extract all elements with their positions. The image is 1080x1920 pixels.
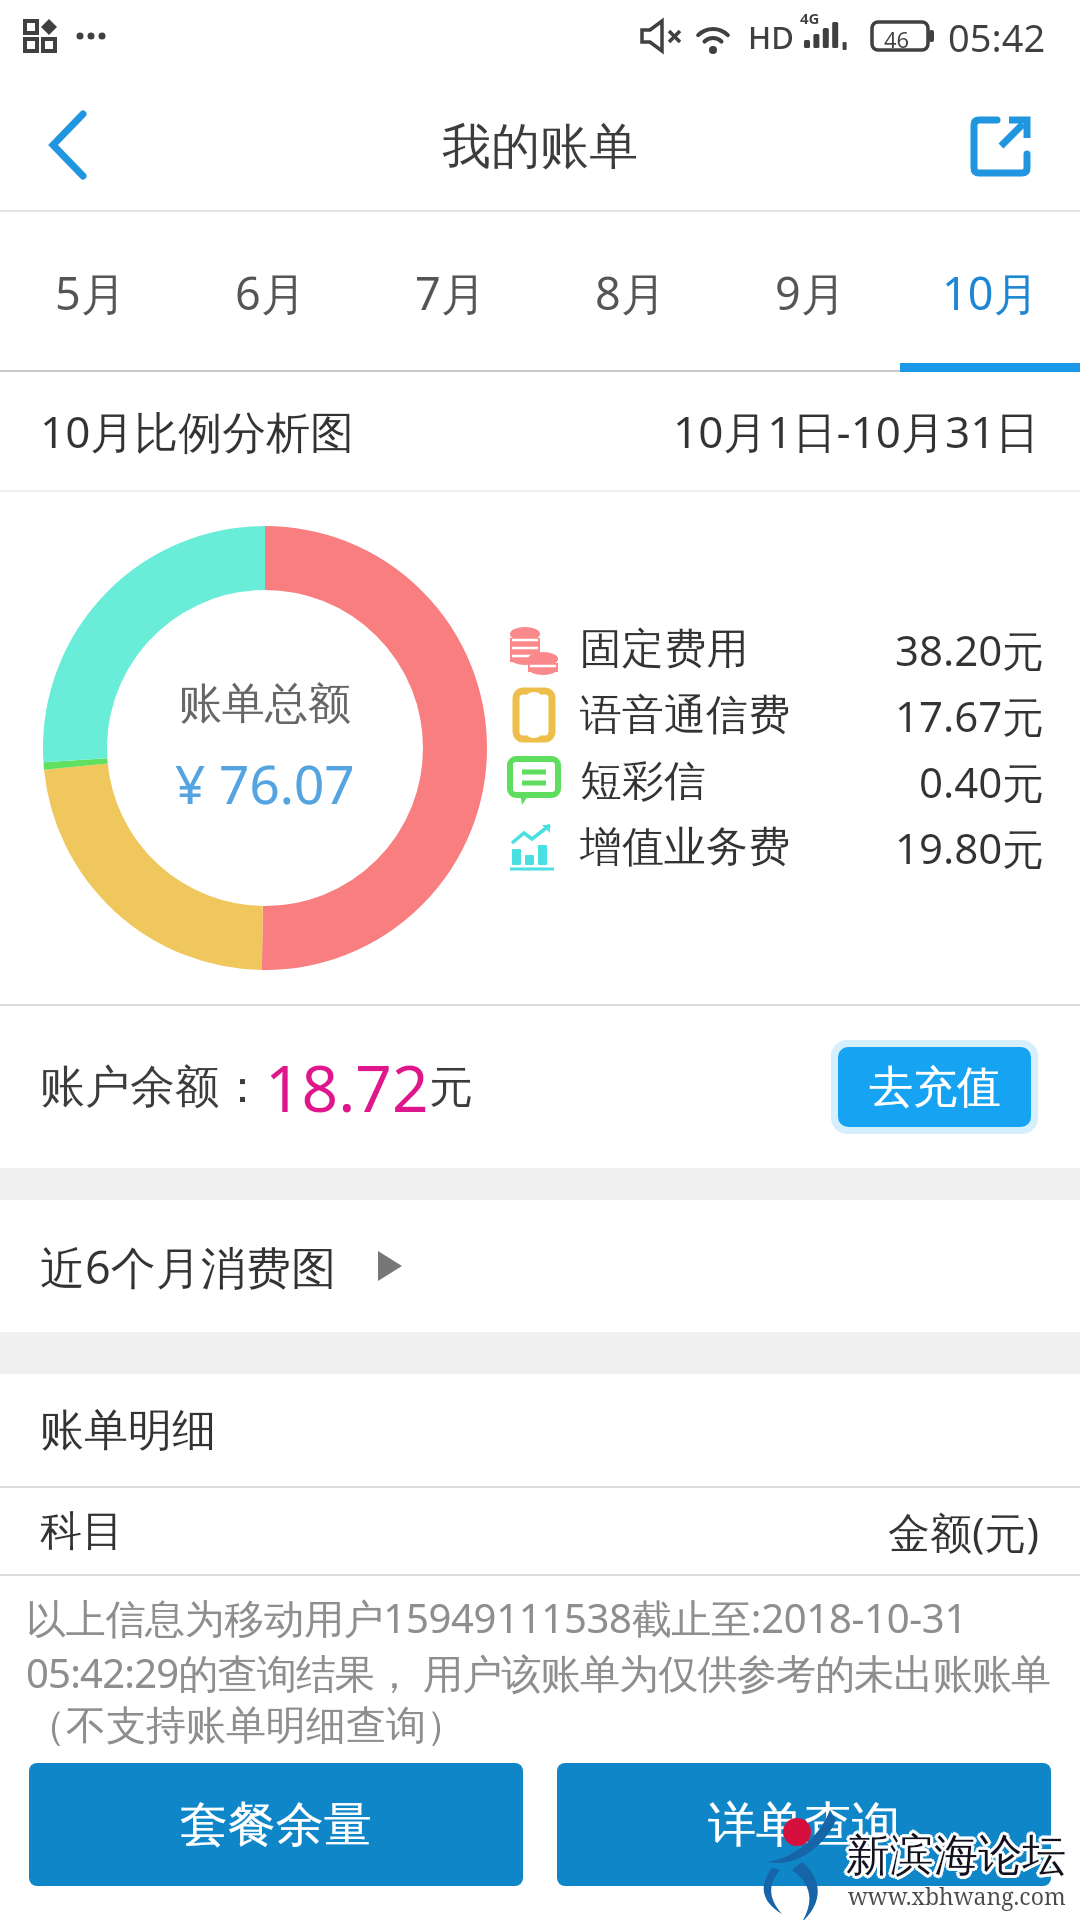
staticText: 8月 — [595, 262, 666, 323]
staticText: 新滨海论坛 — [846, 1831, 1066, 1886]
staticText: 详单查询 — [708, 1795, 900, 1855]
staticText: 元 — [429, 1060, 473, 1115]
staticText: 短彩信 — [580, 755, 706, 808]
staticText: 以上信息为移动用户15949111538截止至:2018-10-31 — [26, 1590, 967, 1645]
staticText: 10月比例分析图 — [40, 401, 355, 461]
button[interactable]: 6月 — [180, 212, 360, 372]
staticText: 17.67元 — [895, 687, 1045, 744]
staticText: HD — [748, 16, 794, 58]
staticText: 固定费用 — [580, 623, 748, 676]
staticText: www.xbhwang.com — [848, 1880, 1066, 1911]
staticText: 05:42 — [948, 11, 1046, 63]
staticText: 账单明细 — [40, 1403, 216, 1458]
staticText: 46 — [884, 24, 910, 54]
staticText: （不支持账单明细查询） — [26, 1700, 466, 1750]
staticText: 近6个月消费图 — [40, 1236, 336, 1297]
staticText: 新滨海论坛 — [843, 1828, 1063, 1883]
staticText: 账单总额 — [179, 677, 351, 731]
staticText: 新滨海论坛 — [844, 1826, 1064, 1881]
staticText: 去充值 — [869, 1060, 1001, 1115]
staticText: 38.20元 — [895, 621, 1045, 678]
button[interactable]: 5月 — [0, 212, 180, 372]
staticText: 4G — [800, 8, 820, 28]
staticText: 账户余额： — [40, 1059, 265, 1116]
staticText: 新滨海论坛 — [849, 1828, 1069, 1883]
staticText: 语音通信费 — [580, 689, 790, 742]
staticText: 7月 — [415, 262, 486, 323]
button[interactable]: 近6个月消费图 — [0, 1200, 1080, 1332]
staticText: 我的账单 — [442, 116, 638, 178]
staticText: ¥ 76.07 — [175, 747, 355, 819]
button[interactable]: 详单查询 — [557, 1763, 1051, 1886]
button[interactable] — [952, 70, 1080, 210]
staticText: 19.80元 — [895, 819, 1045, 876]
staticText: 金额(元) — [888, 1503, 1040, 1560]
staticText: 增值业务费 — [580, 821, 790, 874]
staticText: 新滨海论坛 — [844, 1830, 1064, 1885]
button[interactable]: 7月 — [360, 212, 540, 372]
staticText: 05:42:29的查询结果， 用户该账单为仅供参考的未出账账单 — [26, 1645, 1051, 1700]
staticText: 新滨海论坛 — [846, 1828, 1066, 1883]
staticText: 5月 — [55, 262, 126, 323]
staticText: 新滨海论坛 — [846, 1825, 1066, 1880]
staticText: 科目 — [40, 1505, 124, 1558]
button[interactable]: 套餐余量 — [29, 1763, 523, 1886]
staticText: 6月 — [235, 262, 306, 323]
staticText: 10月1日-10月31日 — [673, 401, 1040, 461]
staticText: 18.72 — [265, 1044, 429, 1131]
staticText: 新滨海论坛 — [848, 1826, 1068, 1881]
button[interactable]: 去充值 — [838, 1047, 1031, 1127]
button[interactable]: 8月 — [540, 212, 720, 372]
button[interactable] — [0, 70, 135, 210]
button[interactable]: 10月 — [900, 212, 1080, 372]
staticText: 9月 — [775, 262, 846, 323]
staticText: 套餐余量 — [180, 1795, 372, 1855]
staticText: 10月 — [942, 262, 1039, 323]
staticText: 新滨海论坛 — [848, 1830, 1068, 1885]
staticText: 0.40元 — [919, 753, 1045, 810]
button[interactable]: 9月 — [720, 212, 900, 372]
